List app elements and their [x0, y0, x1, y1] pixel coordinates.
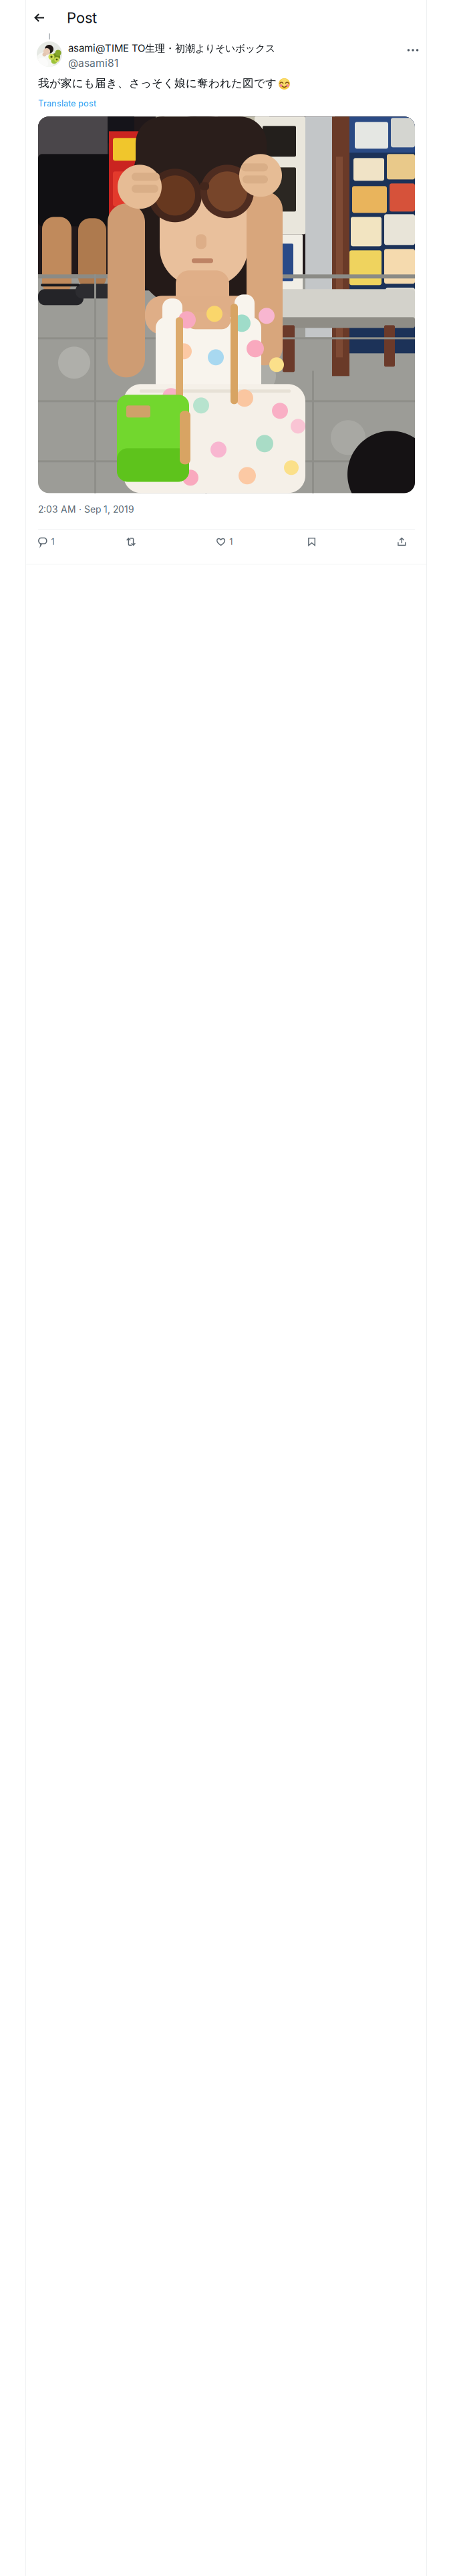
- button[interactable]: 1: [38, 532, 126, 552]
- staticText: 1: [229, 537, 233, 547]
- button[interactable]: Back: [27, 6, 51, 30]
- button[interactable]: More: [402, 41, 424, 59]
- button[interactable]: Translate post: [26, 90, 96, 111]
- staticText: 我が家にも届き、さっそく娘に奪われた図です: [38, 76, 277, 90]
- button[interactable]: Share: [398, 532, 412, 552]
- button[interactable]: Post image: [38, 117, 415, 493]
- button[interactable]: Repost: [126, 532, 216, 552]
- staticText: Translate post: [38, 98, 96, 109]
- staticText: @asami81: [68, 57, 118, 69]
- staticText: Post: [67, 9, 97, 27]
- button[interactable]: Profile photo: [37, 41, 62, 67]
- button[interactable]: 1: [216, 532, 308, 552]
- staticText: asami@TIME TO生理・初潮よりそいボックス: [68, 42, 275, 55]
- staticText: 2:03 AM · Sep 1, 2019: [38, 504, 134, 515]
- button[interactable]: Bookmark: [308, 532, 398, 552]
- staticText: 1: [51, 537, 55, 547]
